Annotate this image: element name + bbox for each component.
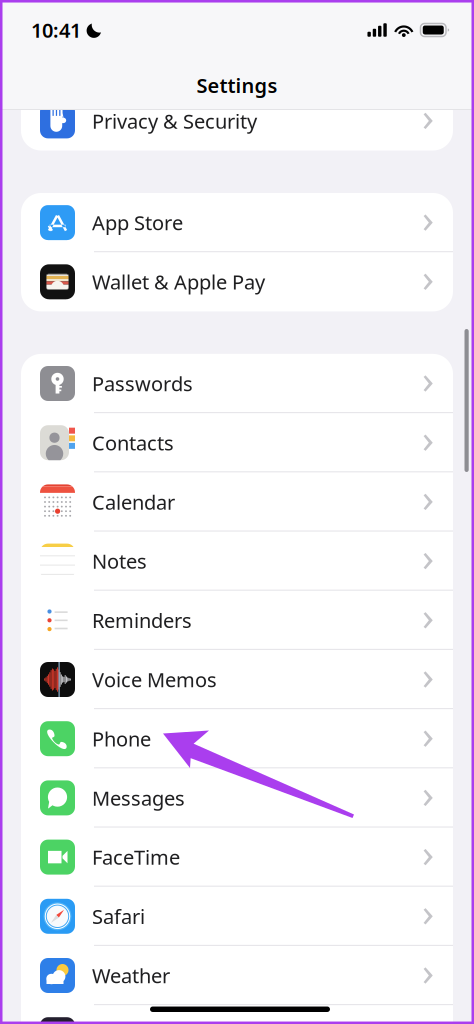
staticText: Notes (92, 548, 147, 574)
staticText: Reminders (92, 607, 192, 634)
button[interactable]: Calendar (21, 472, 453, 531)
button[interactable]: Privacy & Security (21, 91, 453, 150)
staticText: App Store (92, 209, 183, 236)
staticText: Privacy & Security (92, 108, 257, 134)
button[interactable]: Notes (21, 531, 453, 591)
button[interactable]: Contacts (21, 413, 453, 472)
staticText: Messages (92, 785, 185, 811)
button[interactable]: A (21, 1005, 453, 1024)
staticText: Calendar (92, 489, 175, 515)
button[interactable]: Weather (21, 946, 453, 1005)
staticText: Safari (92, 903, 145, 930)
staticText: Contacts (92, 429, 174, 456)
staticText: 10:41 (31, 17, 81, 43)
button[interactable]: Phone (21, 709, 453, 768)
button[interactable]: Voice Memos (21, 650, 453, 709)
button[interactable]: Reminders (21, 591, 453, 650)
staticText: Translate (92, 1021, 177, 1024)
staticText: Wallet & Apple Pay (92, 268, 265, 295)
button[interactable]: Messages (21, 768, 453, 827)
button[interactable]: Safari (21, 887, 453, 946)
button[interactable]: Wallet & Apple Pay (21, 252, 453, 311)
button[interactable]: App Store (21, 193, 453, 252)
staticText: Settings (196, 72, 277, 98)
button[interactable]: Passwords (21, 354, 453, 413)
staticText: Passwords (92, 370, 193, 397)
staticText: Weather (92, 962, 170, 989)
staticText: FaceTime (92, 844, 180, 870)
staticText: Voice Memos (92, 666, 217, 693)
button[interactable]: FaceTime (21, 827, 453, 887)
staticText: Phone (92, 725, 151, 752)
